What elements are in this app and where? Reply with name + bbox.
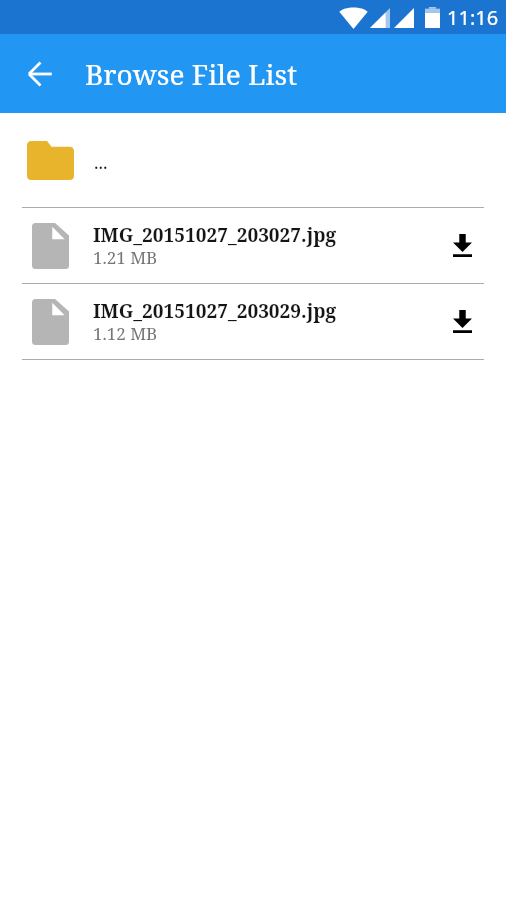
staticText: 1.21 MB <box>93 246 158 269</box>
staticText: 11:16 <box>447 4 499 31</box>
button[interactable]: IMG_20151027_203027.jpg <box>0 208 506 283</box>
button[interactable]: Download <box>434 294 490 350</box>
staticText: ... <box>94 150 108 175</box>
staticText: Browse File List <box>85 55 297 93</box>
button[interactable]: Download <box>434 218 490 274</box>
button[interactable]: ... <box>0 113 506 207</box>
staticText: IMG_20151027_203027.jpg <box>93 222 337 248</box>
button[interactable]: IMG_20151027_203029.jpg <box>0 284 506 359</box>
button[interactable]: Back <box>16 50 63 97</box>
staticText: 1.12 MB <box>93 322 158 345</box>
staticText: IMG_20151027_203029.jpg <box>93 298 337 324</box>
